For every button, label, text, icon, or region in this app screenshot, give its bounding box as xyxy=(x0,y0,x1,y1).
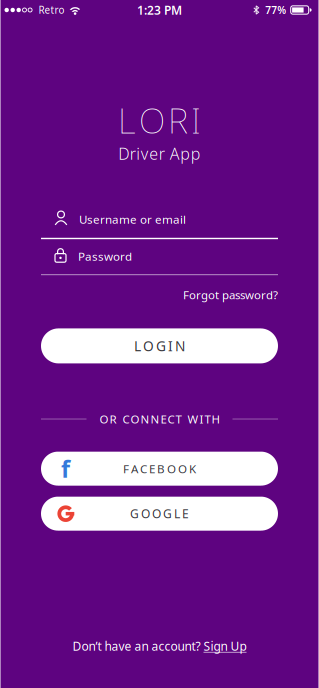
button[interactable]: f xyxy=(41,452,278,486)
staticText: Don’t have an account? xyxy=(72,638,200,654)
staticText: Forgot password? xyxy=(183,287,278,302)
staticText: L O G I N xyxy=(134,337,185,355)
staticText: 77% xyxy=(265,3,286,17)
button[interactable]: Forgot password? xyxy=(183,287,278,302)
button[interactable]: G O O G L E xyxy=(41,497,278,531)
staticText: Sign Up xyxy=(203,638,246,654)
button[interactable]: Username or email xyxy=(41,209,278,239)
staticText: Username or email xyxy=(79,212,186,227)
staticText: L O R I xyxy=(118,97,201,143)
button[interactable]: L O G I N xyxy=(41,328,278,363)
staticText: F A C E B O O K xyxy=(123,461,196,476)
staticText: Driver App xyxy=(118,143,201,164)
button[interactable]: Password xyxy=(41,246,278,275)
button[interactable]: Don’t have an account? xyxy=(72,638,246,654)
staticText: Retro xyxy=(39,3,65,16)
staticText: Password xyxy=(78,248,132,264)
staticText: G O O G L E xyxy=(130,506,189,522)
staticText: f xyxy=(61,453,70,484)
staticText: 1:23 PM xyxy=(137,2,182,18)
staticText: O R C O N N E C T W I T H xyxy=(99,411,219,427)
